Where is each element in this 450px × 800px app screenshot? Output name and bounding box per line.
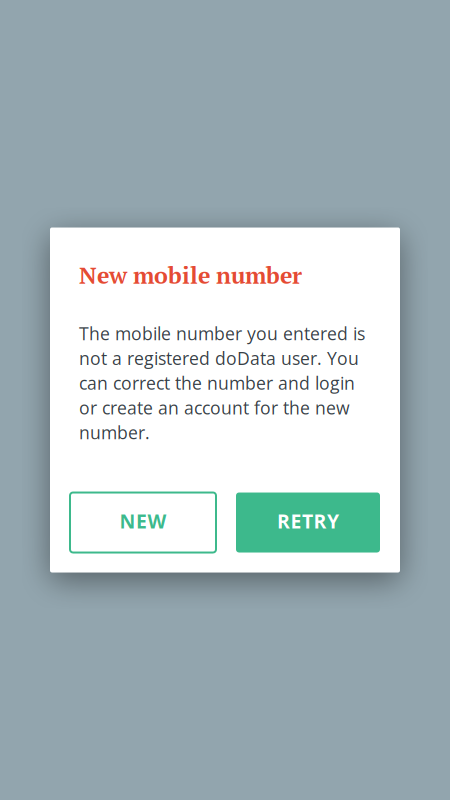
staticText: NEW <box>119 508 167 534</box>
staticText: RETRY <box>277 508 339 534</box>
staticText: The mobile number you entered is not a r… <box>79 321 365 444</box>
staticText: New mobile number <box>79 259 302 290</box>
button[interactable]: RETRY <box>236 492 380 552</box>
button[interactable]: NEW <box>70 492 216 552</box>
